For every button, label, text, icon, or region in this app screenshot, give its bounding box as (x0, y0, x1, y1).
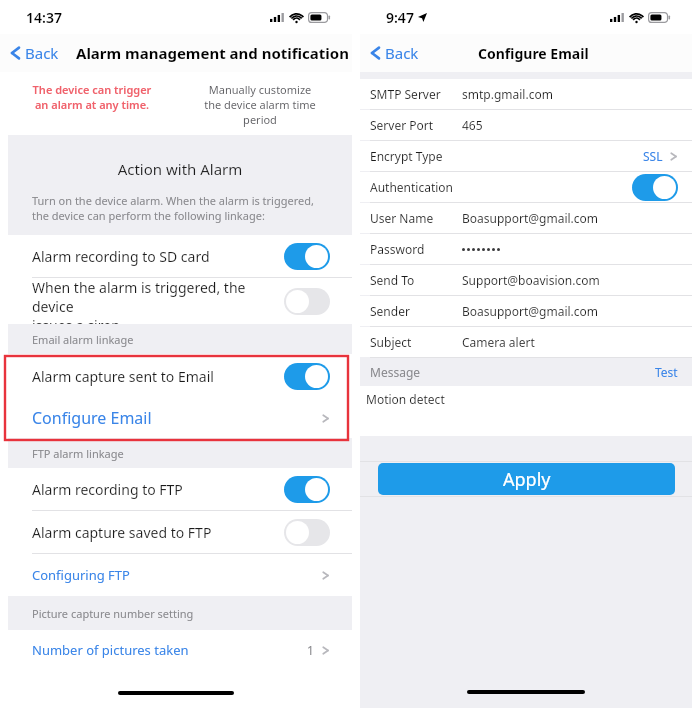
staticText: Email alarm linkage (32, 332, 134, 347)
staticText: Send To (370, 272, 462, 288)
button[interactable]: Alarm recording to FTP (0, 468, 352, 510)
staticText: The device can trigger an alarm at any t… (8, 82, 176, 112)
staticText: 1 (307, 642, 314, 658)
button[interactable]: Alarm capture saved to FTP (0, 511, 352, 553)
staticText: Password (370, 241, 462, 257)
staticText: FTP alarm linkage (32, 446, 124, 461)
button[interactable]: Alarm recording to SD card (0, 235, 352, 277)
button[interactable]: When the alarm is triggered, the device … (0, 278, 352, 324)
staticText: Alarm recording to SD card (32, 247, 274, 266)
staticText: SSL (643, 148, 663, 164)
staticText: Number of pictures taken (32, 641, 307, 659)
staticText: Action with Alarm (8, 159, 352, 179)
button[interactable]: Sender (360, 296, 692, 326)
staticText: Support@boavision.com (462, 272, 678, 288)
other: Back (10, 44, 21, 62)
button[interactable]: Send To (360, 265, 692, 295)
staticText: Motion detect (366, 391, 445, 407)
button[interactable]: On (284, 363, 330, 390)
staticText: When the alarm is triggered, the device … (32, 278, 274, 324)
button[interactable]: Back (0, 43, 65, 63)
button[interactable]: Subject (360, 327, 692, 357)
staticText: Sender (370, 303, 462, 319)
staticText: Alarm management and notification (76, 43, 349, 63)
staticText: Encrypt Type (370, 148, 462, 164)
staticText: Boasupport@gmail.com (462, 210, 678, 226)
staticText: Picture capture number setting (32, 606, 194, 621)
staticText: Back (25, 43, 59, 63)
button[interactable]: On (632, 174, 678, 201)
staticText: Manually customize the device alarm time… (176, 82, 344, 127)
button[interactable]: Server Port (360, 110, 692, 140)
button[interactable]: SMTP Server (360, 79, 692, 109)
button[interactable]: Number of pictures taken (0, 630, 352, 670)
staticText: SMTP Server (370, 86, 462, 102)
button[interactable]: Password (360, 234, 692, 264)
button[interactable]: On (284, 243, 330, 270)
button[interactable]: Off (284, 519, 330, 546)
staticText: Back (385, 43, 419, 63)
other: Back (370, 44, 381, 62)
staticText: Camera alert (462, 334, 678, 350)
staticText: Message (370, 364, 655, 380)
staticText: 14:37 (26, 8, 62, 27)
button[interactable]: Alarm capture sent to Email (0, 354, 352, 398)
button[interactable]: Back (360, 43, 425, 63)
staticText: 9:47 (386, 8, 414, 27)
staticText: Configure Email (32, 407, 321, 429)
button[interactable]: Apply (378, 463, 675, 495)
staticText: Alarm recording to FTP (32, 480, 274, 499)
button[interactable]: Encrypt Type (360, 141, 692, 171)
staticText: Server Port (370, 117, 462, 133)
staticText: User Name (370, 210, 462, 226)
staticText: Configure Email (478, 44, 589, 63)
button[interactable]: Message (360, 358, 692, 386)
staticText: Test (655, 364, 678, 380)
button[interactable]: Off (284, 288, 330, 315)
staticText: Apply (503, 467, 551, 492)
button[interactable]: Configure Email (0, 398, 352, 438)
button[interactable]: On (284, 476, 330, 503)
staticText: Authentication (370, 179, 462, 195)
button[interactable]: Configuring FTP (0, 554, 352, 596)
staticText: 465 (462, 117, 678, 133)
staticText: Alarm capture saved to FTP (32, 523, 274, 542)
staticText: Turn on the device alarm. When the alarm… (32, 193, 314, 223)
staticText: Subject (370, 334, 462, 350)
button[interactable]: Authentication (360, 172, 692, 202)
staticText: Boasupport@gmail.com (462, 303, 678, 319)
staticText: Configuring FTP (32, 566, 321, 584)
staticText: Alarm capture sent to Email (32, 367, 274, 386)
button[interactable]: User Name (360, 203, 692, 233)
staticText: smtp.gmail.com (462, 86, 678, 102)
